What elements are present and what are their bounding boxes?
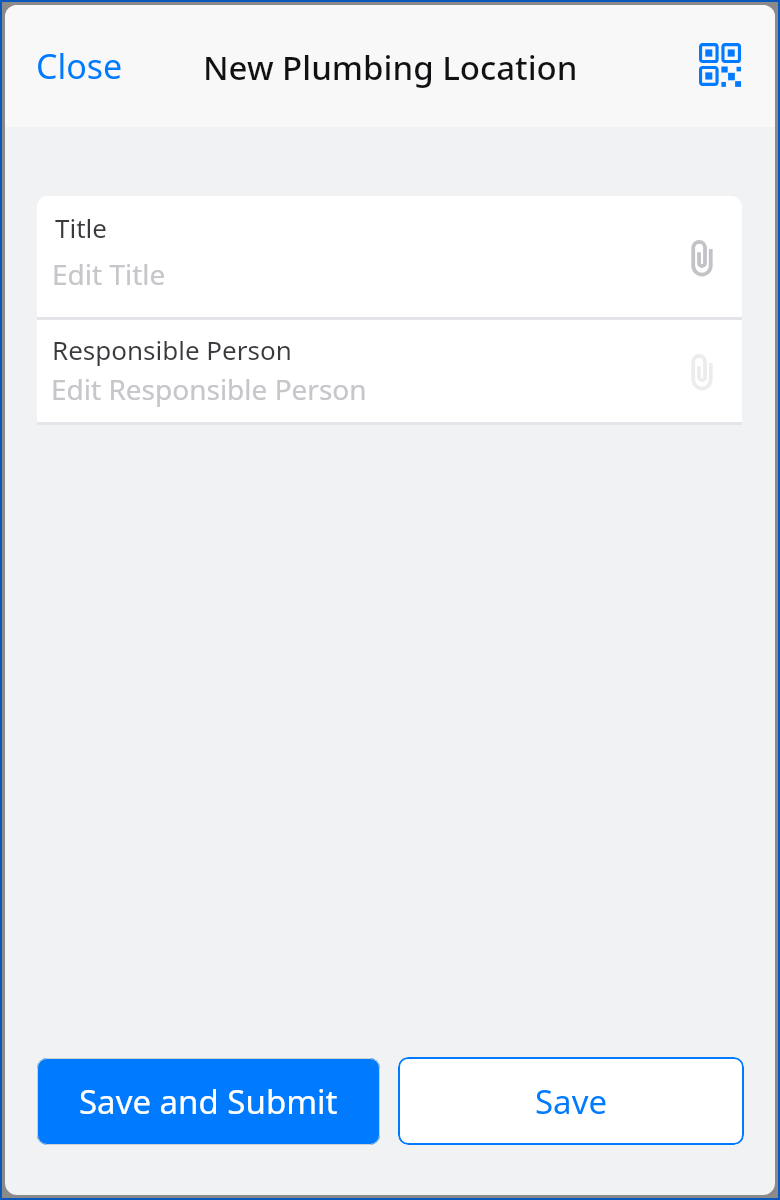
button[interactable]: Save and Submit [37,1058,380,1145]
button[interactable]: Title [37,196,742,317]
staticText: New Plumbing Location [203,45,578,90]
button[interactable]: Attach file [675,345,729,399]
button[interactable]: Scan QR code [684,27,756,101]
button[interactable]: Responsible Person [37,320,742,422]
staticText: Edit Title [52,255,166,293]
staticText: Responsible Person [52,332,292,367]
button[interactable]: Attach file [675,231,729,285]
staticText: Title [55,210,107,245]
button[interactable]: Close [18,23,141,109]
staticText: Save and Submit [79,1079,338,1124]
staticText: Edit Responsible Person [51,370,367,408]
staticText: Close [36,43,123,89]
staticText: Save [535,1079,608,1124]
button[interactable]: Save [398,1057,744,1145]
